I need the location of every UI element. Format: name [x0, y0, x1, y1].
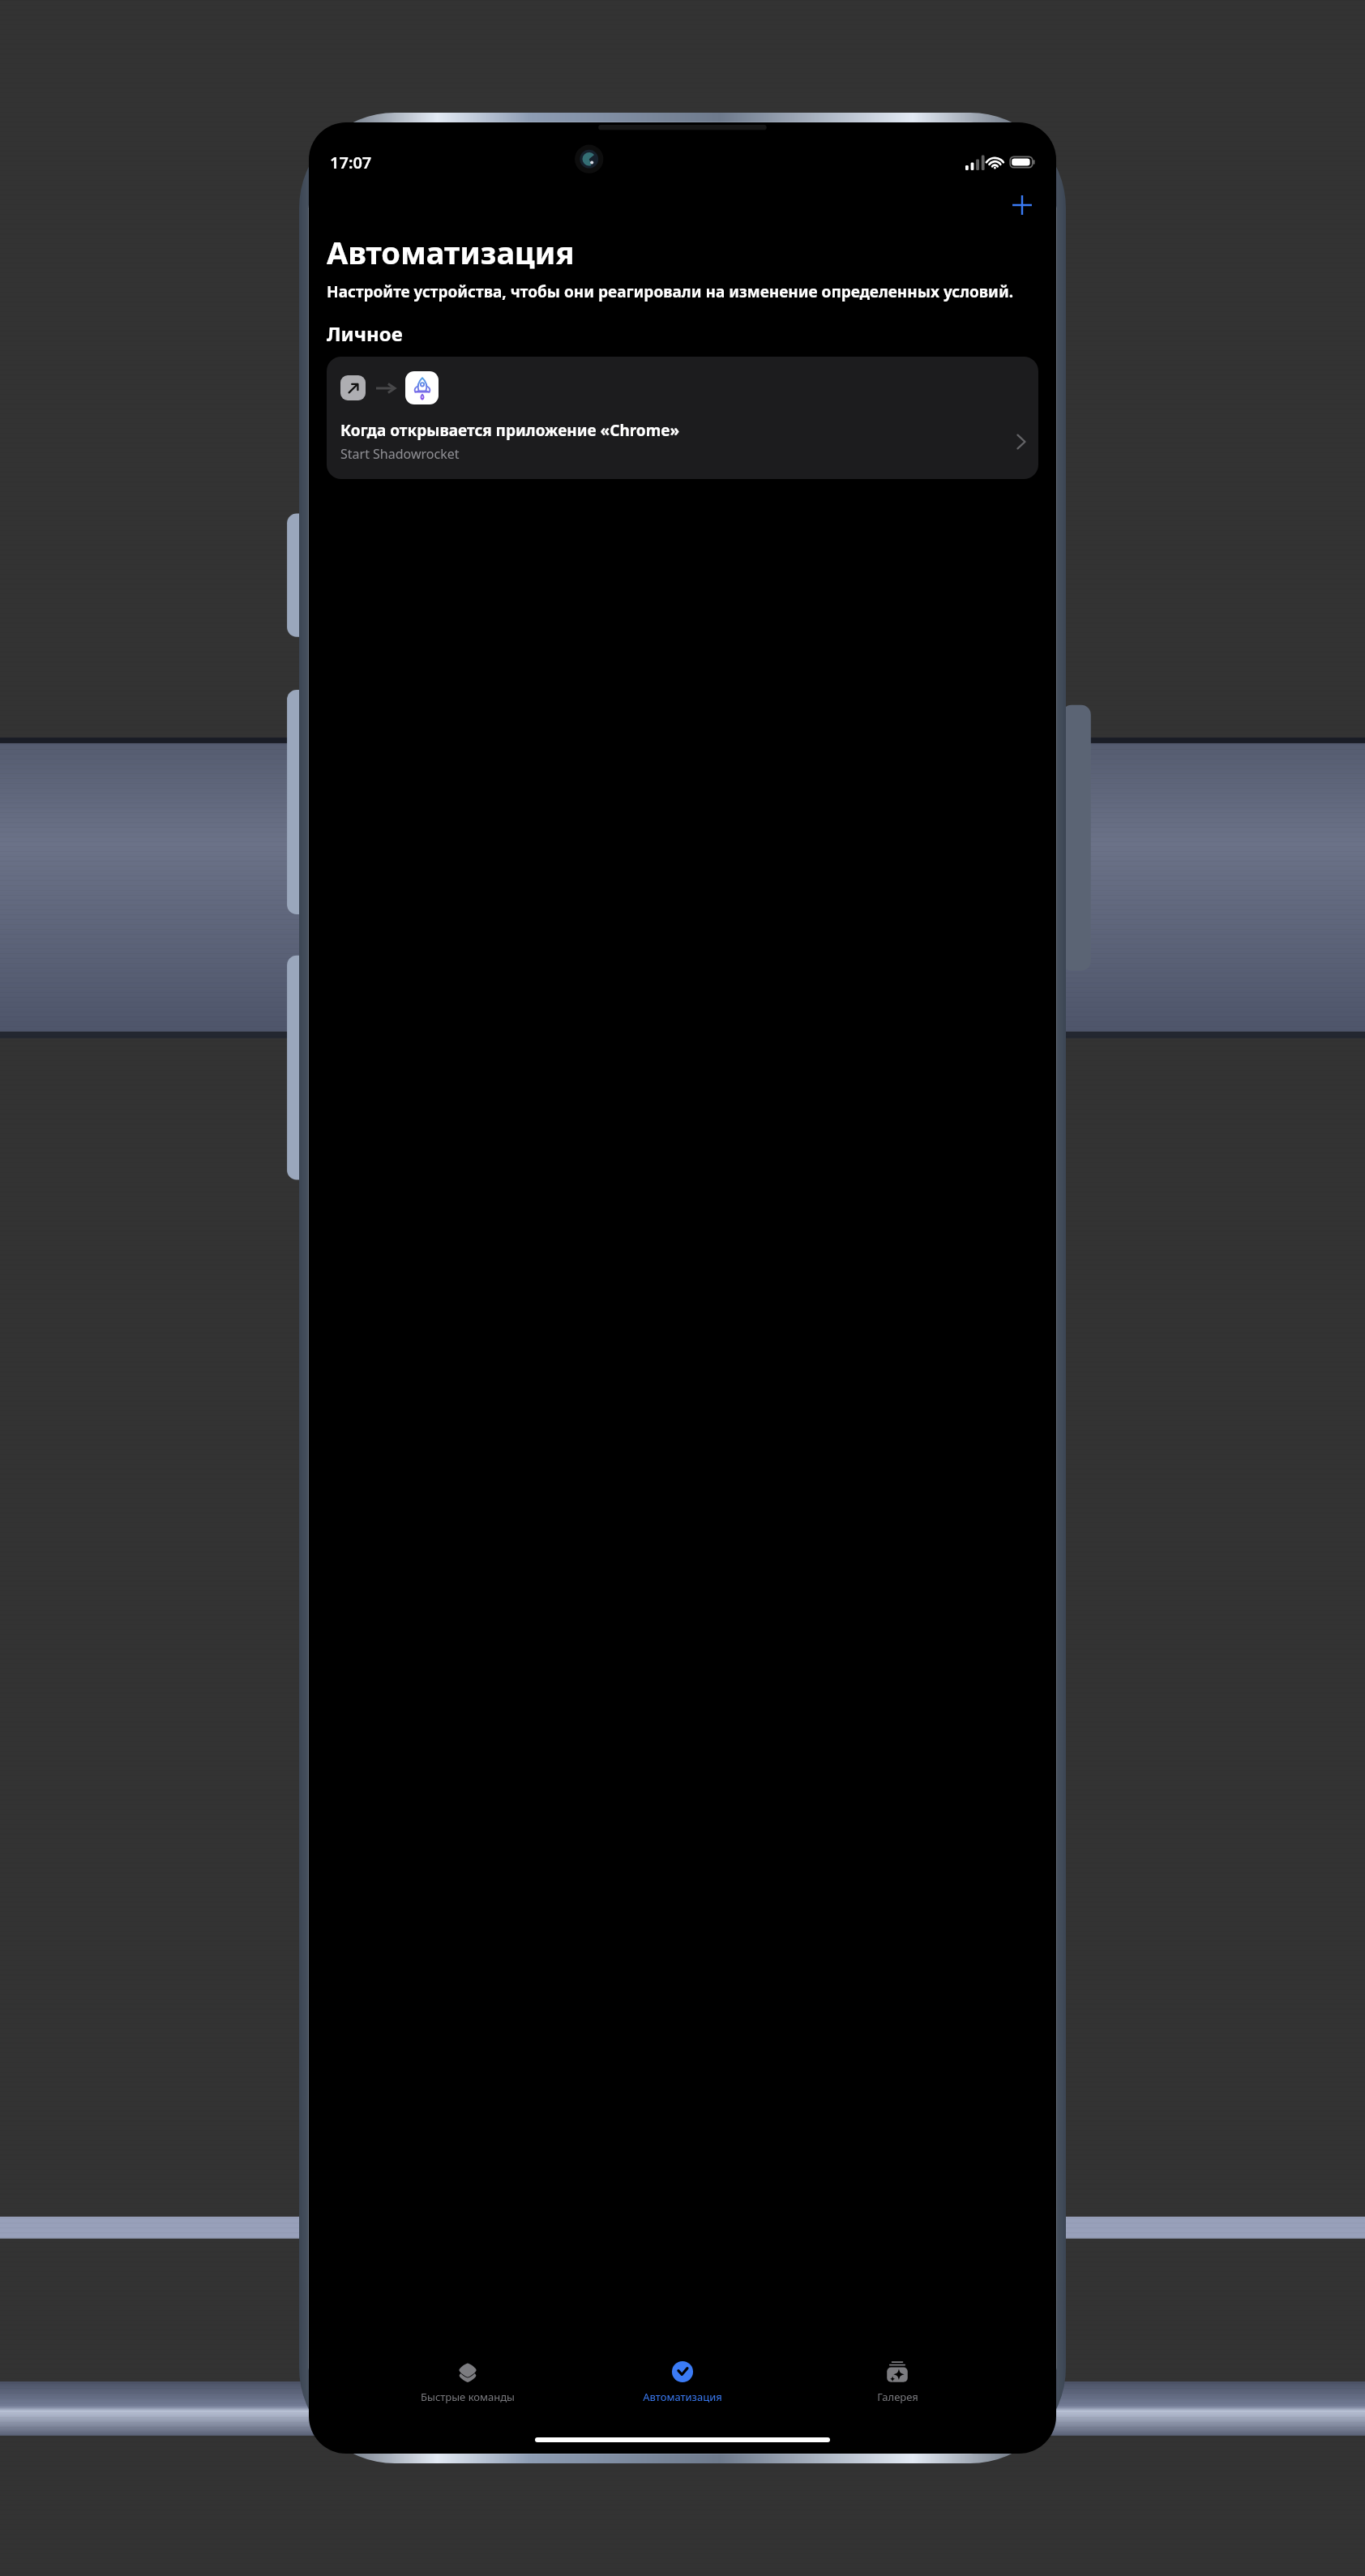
staticText: Автоматизация	[643, 2390, 722, 2404]
staticText: Настройте устройства, чтобы они реагиров…	[327, 281, 1014, 302]
staticText: 17:07	[330, 152, 372, 173]
staticText: Галерея	[877, 2390, 918, 2404]
button[interactable]: Создать автоматизацию	[1003, 186, 1042, 225]
staticText: Автоматизация	[327, 231, 575, 273]
staticText: Start Shadowrocket	[340, 445, 460, 463]
button[interactable]: Быстрые команды	[407, 2351, 528, 2404]
staticText: Когда открывается приложение «Chrome»	[340, 420, 680, 441]
staticText: Быстрые команды	[421, 2390, 515, 2404]
button[interactable]: Галерея	[837, 2351, 958, 2404]
staticText: Личное	[327, 320, 403, 347]
button[interactable]: Когда открывается приложение «Chrome»	[327, 357, 1038, 479]
button[interactable]: Автоматизация	[622, 2351, 743, 2404]
